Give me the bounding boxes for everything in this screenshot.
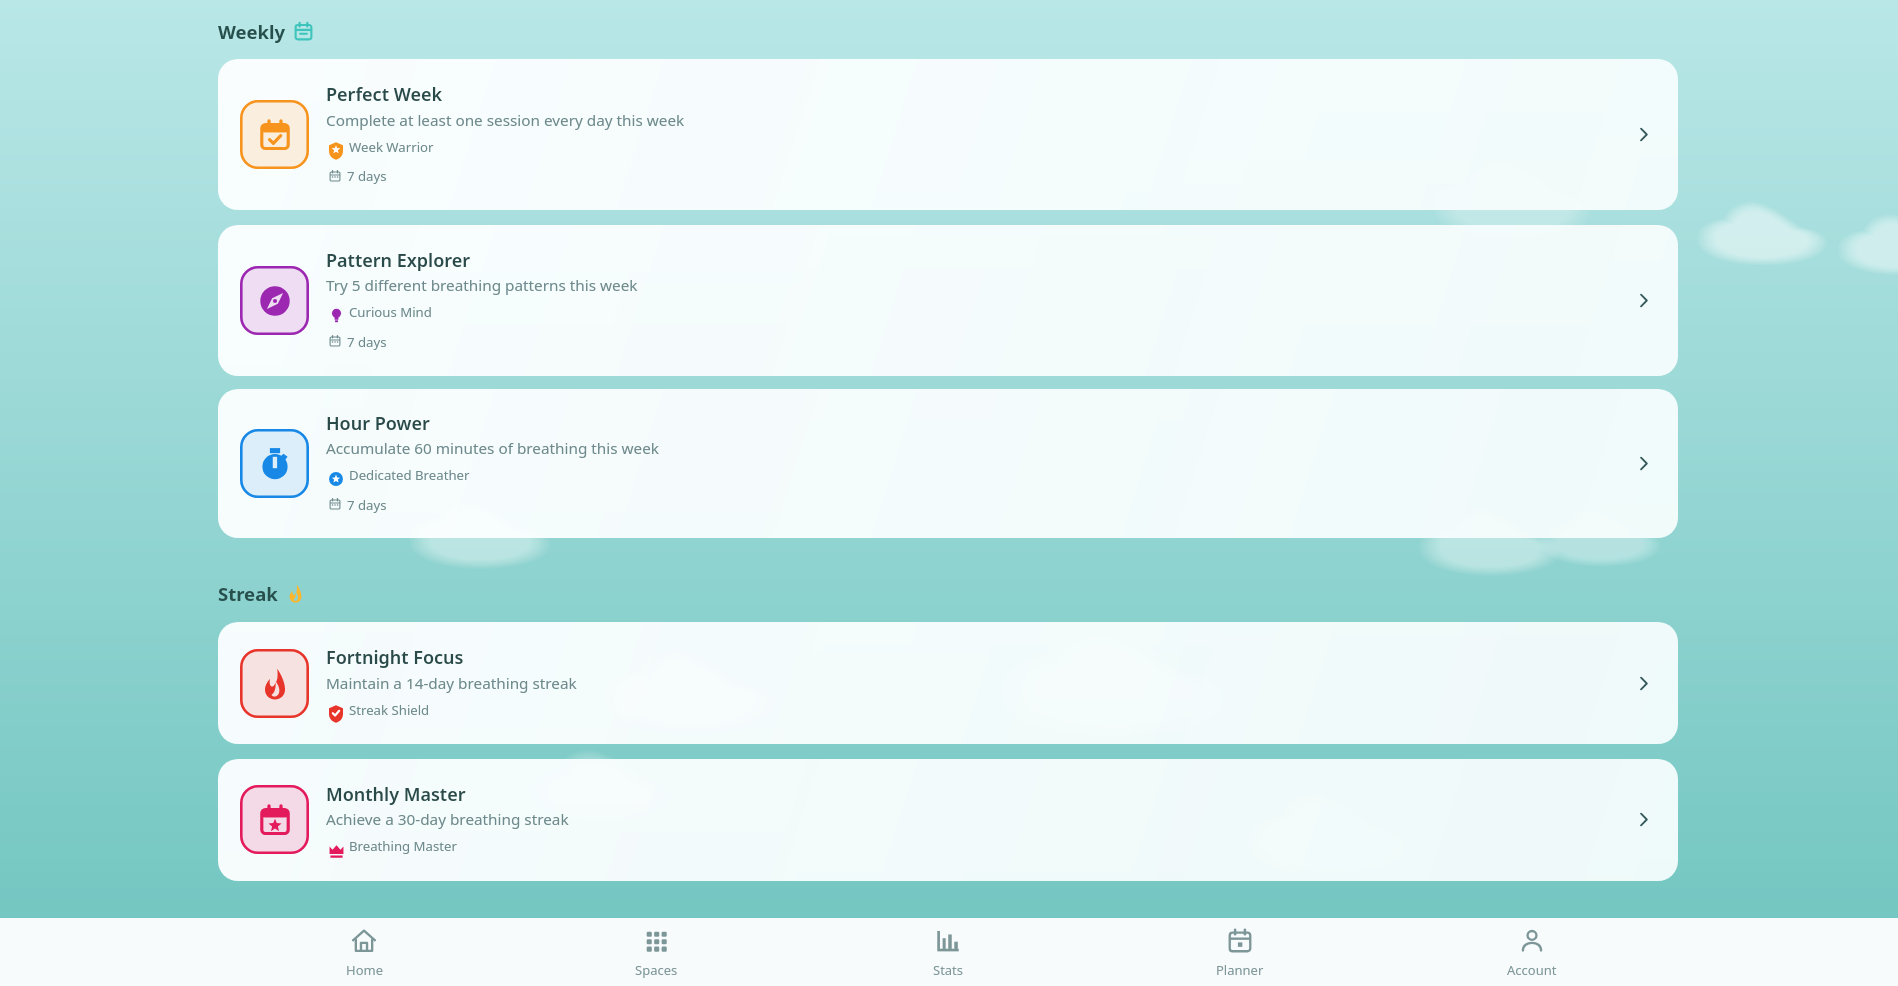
button[interactable]: Open Hour Power: [1633, 453, 1654, 474]
staticText: Achieve a 30-day breathing streak: [326, 809, 569, 830]
staticText: 7 days: [347, 496, 387, 514]
button[interactable]: Hour Power: [218, 389, 1678, 538]
button[interactable]: Open Pattern Explorer: [1633, 290, 1654, 311]
staticText: Week Warrior: [349, 138, 434, 156]
staticText: Spaces: [635, 961, 678, 979]
staticText: Account: [1507, 961, 1557, 979]
button[interactable]: Fortnight Focus: [218, 622, 1678, 744]
staticText: Monthly Master: [326, 782, 466, 807]
staticText: Maintain a 14-day breathing streak: [326, 673, 577, 694]
other: Planner: [1226, 927, 1254, 955]
staticText: Weekly: [218, 19, 286, 44]
button[interactable]: Open Fortnight Focus: [1633, 673, 1654, 694]
button[interactable]: Home: [218, 918, 510, 986]
staticText: Pattern Explorer: [326, 248, 471, 273]
staticText: Streak Shield: [349, 701, 430, 719]
button[interactable]: Account: [1386, 918, 1678, 986]
staticText: Streak: [218, 581, 278, 606]
staticText: Perfect Week: [326, 82, 443, 107]
staticText: Home: [346, 961, 383, 979]
button[interactable]: Spaces: [510, 918, 802, 986]
staticText: Breathing Master: [349, 837, 457, 855]
button[interactable]: Monthly Master: [218, 759, 1678, 881]
staticText: Hour Power: [326, 411, 430, 436]
button[interactable]: Stats: [802, 918, 1094, 986]
other: Home: [350, 927, 378, 955]
other: Account: [1518, 927, 1546, 955]
button[interactable]: Open Perfect Week: [1633, 124, 1654, 145]
staticText: Fortnight Focus: [326, 645, 464, 670]
staticText: Complete at least one session every day …: [326, 110, 685, 131]
staticText: Accumulate 60 minutes of breathing this …: [326, 438, 659, 459]
other: Spaces: [642, 927, 670, 955]
staticText: Try 5 different breathing patterns this …: [326, 275, 638, 296]
other: Stats: [934, 927, 962, 955]
staticText: 7 days: [347, 167, 387, 185]
staticText: Curious Mind: [349, 303, 432, 321]
staticText: Dedicated Breather: [349, 466, 470, 484]
staticText: 7 days: [347, 333, 387, 351]
button[interactable]: Perfect Week: [218, 59, 1678, 210]
staticText: Stats: [933, 961, 964, 979]
staticText: Planner: [1216, 961, 1264, 979]
button[interactable]: Pattern Explorer: [218, 225, 1678, 376]
button[interactable]: Planner: [1094, 918, 1386, 986]
button[interactable]: Open Monthly Master: [1633, 809, 1654, 830]
